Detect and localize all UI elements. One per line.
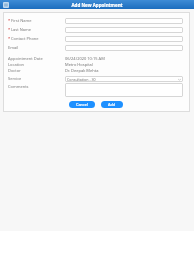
- staticText: Location: [8, 62, 25, 67]
- staticText: Dr. Deepak Mehta: [65, 68, 99, 73]
- staticText: *: [8, 36, 11, 41]
- staticText: Contact Phone: [11, 36, 39, 41]
- staticText: Appointment Date: [8, 56, 43, 61]
- staticText: *: [8, 18, 11, 23]
- button[interactable]: Menu: [3, 2, 9, 8]
- staticText: Last Name: [11, 27, 32, 32]
- button[interactable]: Consultation - 30: [65, 76, 183, 82]
- button[interactable]: Cancel: [69, 101, 95, 108]
- button[interactable]: [65, 45, 183, 51]
- staticText: Cancel: [76, 102, 89, 107]
- staticText: Consultation - 30: [67, 77, 96, 82]
- staticText: 06/24/2020 10:15 AM: [65, 56, 105, 61]
- button[interactable]: [65, 27, 183, 33]
- staticText: Add New Appointment: [71, 2, 123, 8]
- staticText: Doctor: [8, 68, 21, 73]
- staticText: Email: [8, 45, 19, 50]
- staticText: Comments: [8, 84, 29, 89]
- staticText: Service: [8, 76, 22, 81]
- staticText: *: [8, 27, 11, 32]
- button[interactable]: [65, 18, 183, 24]
- button[interactable]: [65, 83, 183, 97]
- button[interactable]: [65, 36, 183, 42]
- staticText: Metro Hospital: [65, 62, 93, 67]
- button[interactable]: Add: [101, 101, 123, 108]
- staticText: Add: [108, 102, 116, 107]
- staticText: First Name: [11, 18, 32, 23]
